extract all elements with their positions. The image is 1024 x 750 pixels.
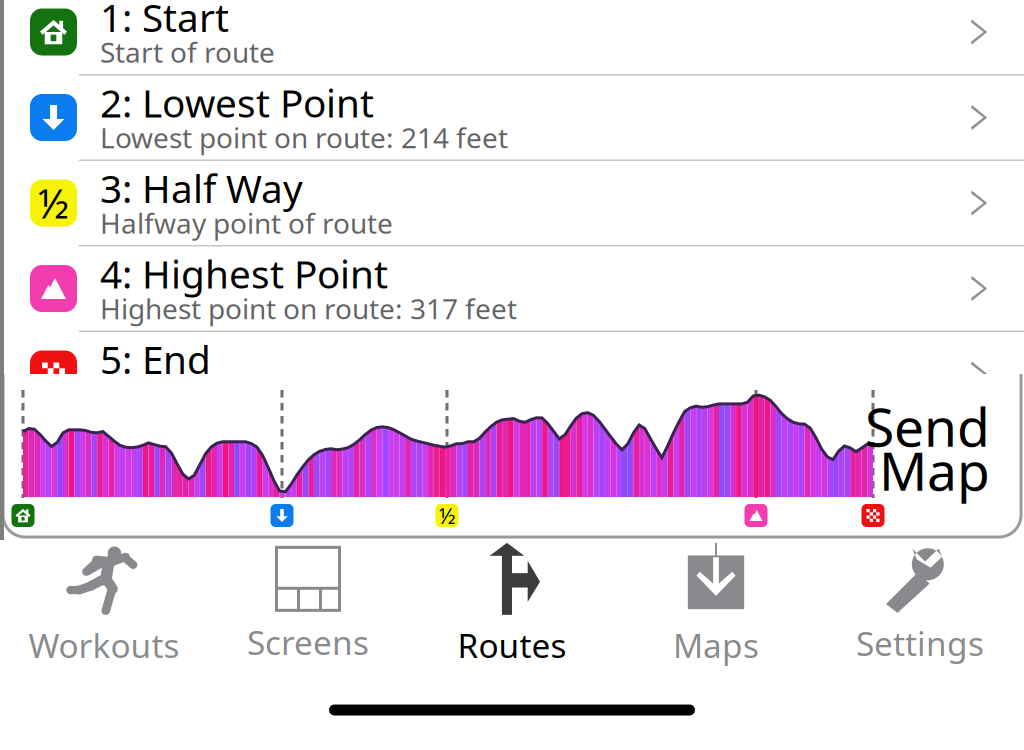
staticText: ½ [439,501,455,530]
staticText: Routes [457,623,566,667]
staticText: ½ [38,176,69,229]
staticText: 1: Start [100,0,229,43]
staticText: Map [879,435,990,505]
staticText: 4: Highest Point [100,248,388,299]
staticText: Start of route [100,33,275,71]
staticText: Maps [673,623,759,667]
staticText: Send [865,391,990,461]
button[interactable]: 1: Start [0,0,1024,74]
staticText: 5: End [100,333,211,385]
button[interactable]: Routes [410,550,614,660]
staticText: Highest point on route: 317 feet [100,290,517,327]
button[interactable]: 4: Highest Point [0,246,1024,330]
button[interactable]: Screens [206,550,410,660]
button[interactable]: Workouts [2,550,206,660]
button[interactable]: Settings [818,550,1022,660]
staticText: Halfway point of route [100,204,393,242]
button[interactable]: 5: End [0,332,1024,416]
staticText: Workouts [28,623,179,667]
staticText: 3: Half Way [100,162,303,214]
staticText: 2: Lowest Point [100,77,374,128]
button[interactable]: 2: Lowest Point [0,75,1024,159]
staticText: Settings [856,621,984,665]
button[interactable]: Send [850,404,990,492]
button[interactable]: ½ [0,161,1024,245]
button[interactable]: Maps [614,550,818,660]
staticText: Screens [247,620,369,664]
staticText: Lowest point on route: 214 feet [100,119,508,156]
